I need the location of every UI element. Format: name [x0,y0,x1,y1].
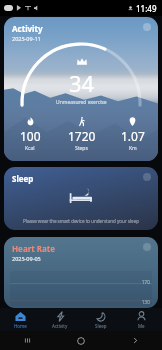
button[interactable]: More [143,23,151,31]
staticText: 100 [20,128,41,144]
staticText: 1720 [68,128,96,144]
staticText: 1.07 [121,128,145,144]
staticText: Unmeasured exercise [56,99,107,106]
staticText: Steps [75,145,88,152]
staticText: Activity [52,323,68,329]
staticText: 2025-09-11 [12,35,41,42]
button[interactable]: Sleep [80,308,121,331]
staticText: Km [129,145,137,152]
staticText: Activity [12,23,43,34]
button[interactable]: Me [121,308,162,331]
staticText: 2025-09-05 [12,255,41,262]
staticText: 130 [142,299,150,305]
staticText: Home [14,323,27,329]
staticText: 170 [142,279,150,285]
button[interactable]: More [143,173,151,181]
button[interactable]: More [143,243,151,251]
staticText: Sleep [12,173,34,184]
staticText: 34 [69,68,95,98]
button[interactable]: Home [0,308,40,331]
staticText: 11:49 [136,3,157,14]
button[interactable]: Activity [40,308,80,331]
staticText: Kcal [25,145,35,152]
staticText: Please wear the smart device to understa… [4,218,158,224]
staticText: Me [138,323,145,329]
staticText: Heart Rate [12,243,56,254]
staticText: Sleep [95,323,107,329]
